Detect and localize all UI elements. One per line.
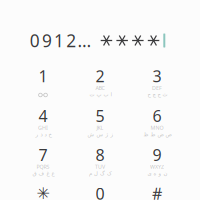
staticText: WXYZ (150, 163, 164, 170)
staticText: 9 (152, 144, 161, 165)
staticText: 7 (38, 144, 47, 165)
button[interactable]: 5 JKL (71, 106, 128, 145)
staticText: ع غ ف ق (32, 170, 54, 176)
staticText: 4 (38, 105, 47, 126)
staticText: 8 (95, 144, 104, 165)
staticText: PQRS (36, 163, 49, 170)
button[interactable]: 0, plus (71, 183, 128, 200)
staticText: خ د ذ ر (35, 131, 51, 137)
staticText: ک گ ل م (88, 170, 111, 176)
staticText: TUV (95, 163, 105, 170)
button[interactable]: 3 DEF (128, 66, 185, 105)
staticText: MNO (150, 124, 163, 131)
button[interactable]: 8 TUV (71, 145, 128, 184)
button[interactable]: 7 PQRS (14, 145, 71, 184)
staticText: ا ب پ ت (89, 91, 111, 98)
staticText: # (152, 183, 162, 200)
button[interactable]: star (14, 183, 71, 200)
button[interactable]: 1, voicemail (14, 66, 71, 105)
staticText: ص ض ط ظ (143, 131, 171, 137)
staticText: 5 (95, 105, 104, 126)
button[interactable]: 4 GHI (14, 106, 71, 145)
button[interactable]: pound (128, 183, 185, 200)
staticText: 2 (95, 65, 104, 87)
staticText: ABC (95, 84, 104, 92)
staticText: 3 (152, 65, 161, 87)
staticText: ز ژ س ش (87, 131, 113, 137)
staticText: DEF (152, 84, 162, 92)
staticText: GHI (38, 124, 48, 131)
staticText: JKL (96, 124, 103, 131)
staticText: 0 (95, 183, 104, 200)
button[interactable]: 9 WXYZ (128, 145, 185, 184)
staticText: ن و ه ی (147, 170, 167, 176)
button[interactable]: 6 MNO (128, 106, 185, 145)
staticText: ث ج چ ح (147, 91, 167, 98)
button[interactable]: 2 ABC (71, 66, 128, 105)
staticText: 6 (152, 105, 161, 126)
staticText: 1 (38, 65, 47, 87)
staticText: 091241 (30, 29, 98, 52)
staticText: ✳ (36, 184, 49, 200)
